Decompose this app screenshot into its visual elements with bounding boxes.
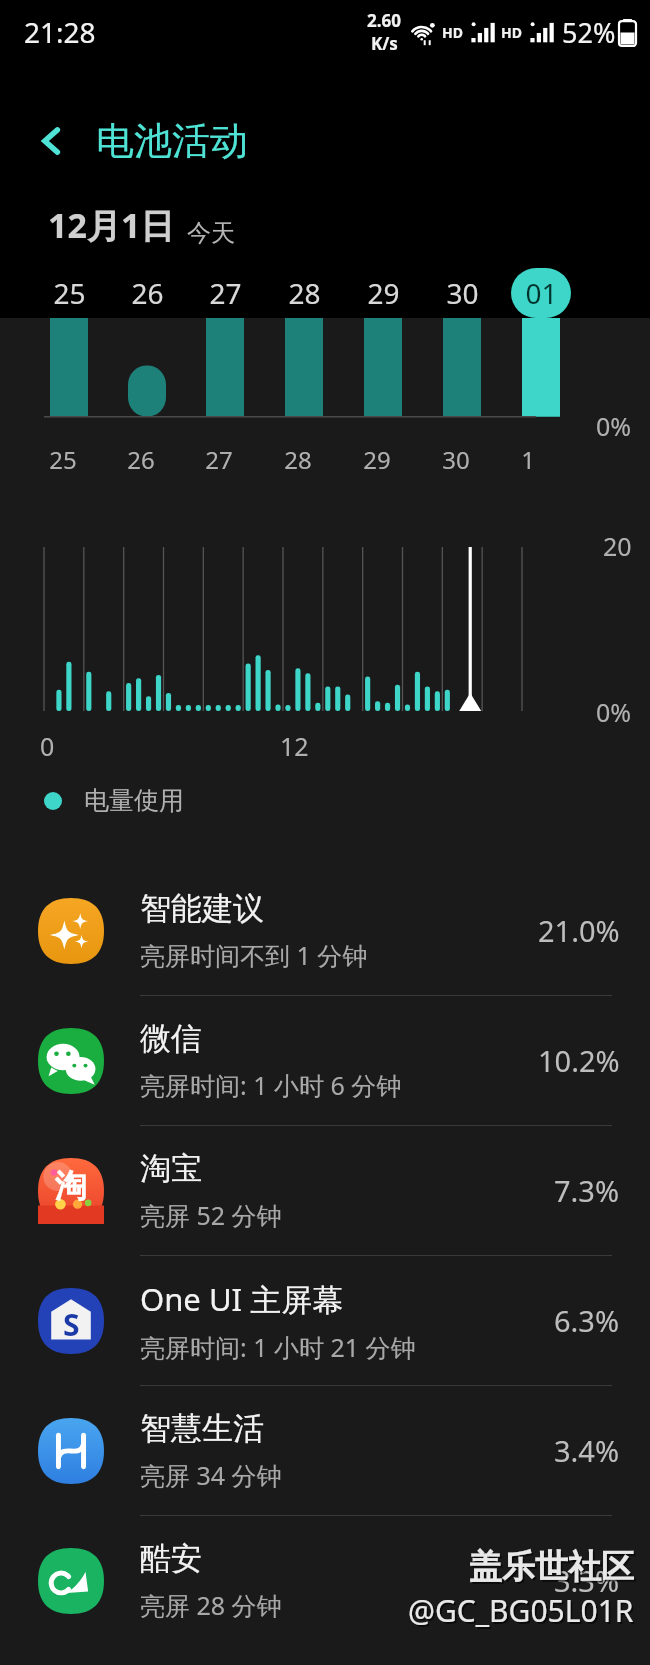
staticText: HD bbox=[442, 23, 463, 42]
button[interactable]: 酷安 bbox=[0, 1516, 650, 1645]
staticText: 电池活动 bbox=[96, 117, 248, 165]
staticText: 盖乐世社区 bbox=[469, 1546, 634, 1588]
button[interactable]: Back bbox=[22, 111, 82, 171]
staticText: 30 bbox=[446, 274, 479, 312]
staticText: 21.0% bbox=[538, 911, 620, 950]
staticText: 盖乐世社区 bbox=[471, 1548, 636, 1590]
staticText: 28 bbox=[284, 443, 312, 476]
staticText: 12月1日 bbox=[48, 202, 175, 248]
staticText: 20 bbox=[603, 529, 632, 563]
button[interactable]: 智能建议 bbox=[0, 866, 650, 995]
staticText: 微信 bbox=[140, 1019, 202, 1058]
button[interactable]: 30 bbox=[432, 268, 492, 318]
staticText: 7.3% bbox=[554, 1171, 620, 1210]
button[interactable]: 27 bbox=[195, 268, 255, 318]
staticText: 今天 bbox=[187, 218, 235, 248]
staticText: 25 bbox=[49, 443, 77, 476]
staticText: 29 bbox=[363, 443, 391, 476]
button[interactable]: 智慧生活 bbox=[0, 1386, 650, 1515]
staticText: 0% bbox=[596, 409, 632, 443]
staticText: 10.2% bbox=[538, 1041, 620, 1080]
button[interactable]: 25 bbox=[39, 268, 99, 318]
staticText: 25 bbox=[53, 274, 86, 312]
staticText: 29 bbox=[367, 274, 400, 312]
staticText: 0% bbox=[596, 695, 632, 729]
staticText: 1 bbox=[521, 443, 535, 476]
staticText: 12 bbox=[280, 729, 309, 763]
staticText: 3.3% bbox=[554, 1561, 620, 1600]
staticText: 淘宝 bbox=[140, 1149, 202, 1188]
staticText: 01 bbox=[525, 274, 558, 312]
button[interactable]: 28 bbox=[274, 268, 334, 318]
staticText: 亮屏 28 分钟 bbox=[140, 1588, 282, 1622]
staticText: 27 bbox=[209, 274, 242, 312]
button[interactable]: 29 bbox=[353, 268, 413, 318]
staticText: 酷安 bbox=[140, 1539, 202, 1578]
staticText: 淘 bbox=[55, 1166, 87, 1206]
staticText: 26 bbox=[131, 274, 164, 312]
staticText: 27 bbox=[205, 443, 233, 476]
staticText: HD bbox=[501, 23, 522, 42]
staticText: 亮屏时间: 1 小时 21 分钟 bbox=[140, 1330, 416, 1364]
staticText: @GC_BG05L01R bbox=[408, 1590, 634, 1631]
staticText: S bbox=[63, 1304, 80, 1345]
staticText: 52% bbox=[562, 14, 616, 51]
staticText: 亮屏时间: 1 小时 6 分钟 bbox=[140, 1068, 402, 1102]
staticText: 亮屏 52 分钟 bbox=[140, 1198, 282, 1232]
button[interactable]: 26 bbox=[117, 268, 177, 318]
staticText: 6.3% bbox=[554, 1301, 620, 1340]
staticText: 28 bbox=[288, 274, 321, 312]
staticText: 0 bbox=[40, 729, 55, 763]
button[interactable]: 淘 bbox=[0, 1126, 650, 1255]
staticText: 智慧生活 bbox=[140, 1409, 264, 1448]
staticText: 30 bbox=[442, 443, 470, 476]
staticText: 26 bbox=[127, 443, 155, 476]
staticText: 2.60 bbox=[367, 9, 401, 32]
button[interactable]: 微信 bbox=[0, 996, 650, 1125]
staticText: K/s bbox=[371, 32, 398, 55]
staticText: 21:28 bbox=[24, 13, 96, 51]
button[interactable]: 01 bbox=[511, 268, 571, 318]
staticText: 亮屏时间不到 1 分钟 bbox=[140, 938, 368, 972]
staticText: 电量使用 bbox=[84, 785, 184, 816]
button[interactable]: S bbox=[0, 1256, 650, 1385]
staticText: @GC_BG05L01R bbox=[410, 1592, 636, 1633]
staticText: 智能建议 bbox=[140, 889, 264, 928]
staticText: One UI 主屏幕 bbox=[140, 1278, 344, 1320]
staticText: 亮屏 34 分钟 bbox=[140, 1458, 282, 1492]
staticText: 3.4% bbox=[554, 1431, 620, 1470]
